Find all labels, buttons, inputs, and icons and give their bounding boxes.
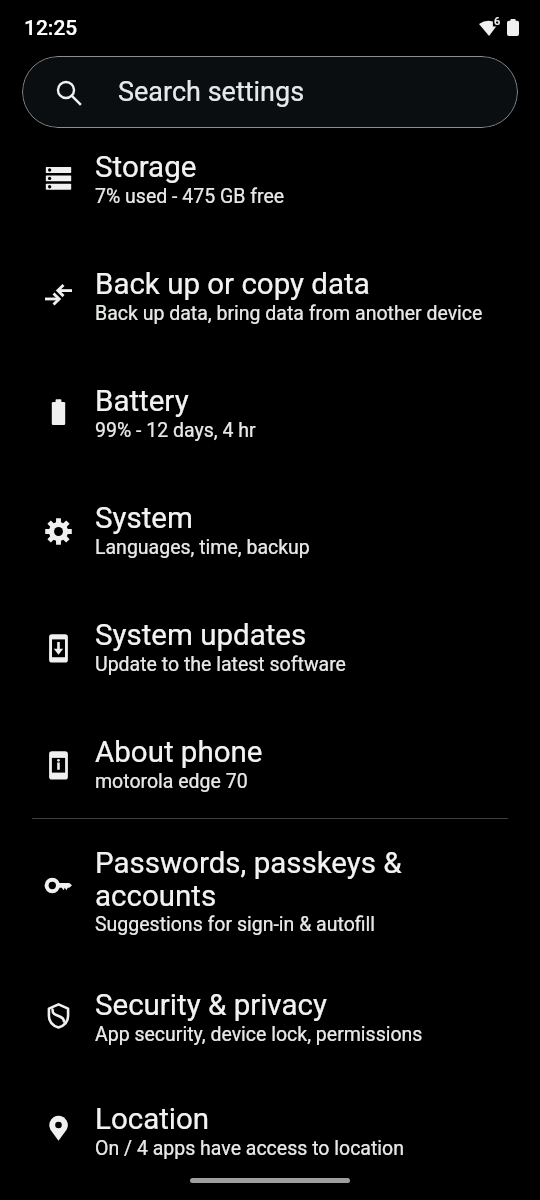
- button[interactable]: Storage: [0, 128, 540, 245]
- staticText: 12:25: [24, 16, 78, 41]
- staticText: Languages, time, backup: [95, 536, 310, 559]
- button[interactable]: Location: [0, 1080, 540, 1197]
- staticText: Location: [95, 1102, 210, 1137]
- staticText: About phone: [95, 735, 263, 770]
- staticText: System updates: [95, 618, 307, 653]
- button[interactable]: Passwords, passkeys & accounts: [0, 819, 540, 966]
- staticText: System: [95, 501, 193, 536]
- staticText: Suggestions for sign-in & autofill: [95, 913, 376, 936]
- other: Battery full: [507, 19, 519, 36]
- staticText: 6: [494, 15, 501, 28]
- staticText: Search settings: [118, 76, 305, 108]
- button[interactable]: System: [0, 479, 540, 596]
- staticText: Security & privacy: [95, 988, 327, 1023]
- staticText: Storage: [95, 150, 197, 185]
- staticText: Update to the latest software: [95, 653, 346, 676]
- staticText: Back up data, bring data from another de…: [95, 302, 483, 325]
- staticText: Passwords, passkeys & accounts: [95, 846, 490, 913]
- staticText: 7% used - 475 GB free: [95, 185, 285, 208]
- staticText: Battery: [95, 384, 189, 419]
- other: Wi-Fi 6 connected: [479, 19, 498, 36]
- staticText: App security, device lock, permissions: [95, 1023, 423, 1046]
- button[interactable]: System updates: [0, 596, 540, 713]
- button[interactable]: Back up or copy data: [0, 245, 540, 362]
- staticText: motorola edge 70: [95, 770, 248, 793]
- button[interactable]: Security & privacy: [0, 966, 540, 1080]
- button[interactable]: About phone: [0, 713, 540, 818]
- staticText: Back up or copy data: [95, 267, 370, 302]
- staticText: On / 4 apps have access to location: [95, 1137, 404, 1160]
- button[interactable]: Search settings: [22, 56, 518, 128]
- button[interactable]: Battery: [0, 362, 540, 479]
- staticText: 99% - 12 days, 4 hr: [95, 419, 256, 442]
